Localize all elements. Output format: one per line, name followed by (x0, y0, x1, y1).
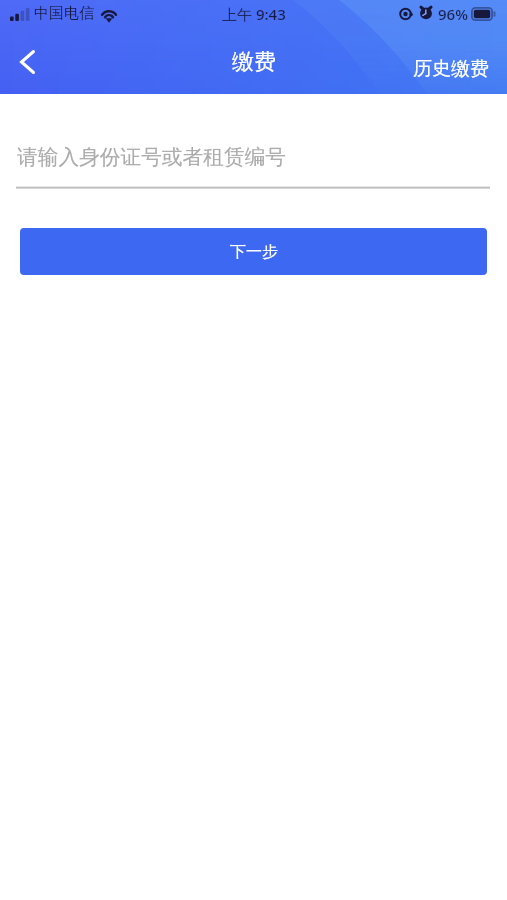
staticText: 历史缴费 (413, 57, 489, 81)
staticText: 下一步 (230, 242, 278, 262)
staticText: 缴费 (232, 48, 276, 76)
staticText: 请输入身份证号或者租赁编号 (17, 144, 286, 170)
button[interactable]: Back (5, 39, 49, 85)
staticText: 96% (438, 4, 468, 24)
button[interactable]: 下一步 (20, 228, 487, 275)
staticText: 中国电信 (34, 4, 94, 23)
staticText: 上午 9:43 (222, 4, 286, 24)
button[interactable]: 历史缴费 (401, 38, 500, 84)
